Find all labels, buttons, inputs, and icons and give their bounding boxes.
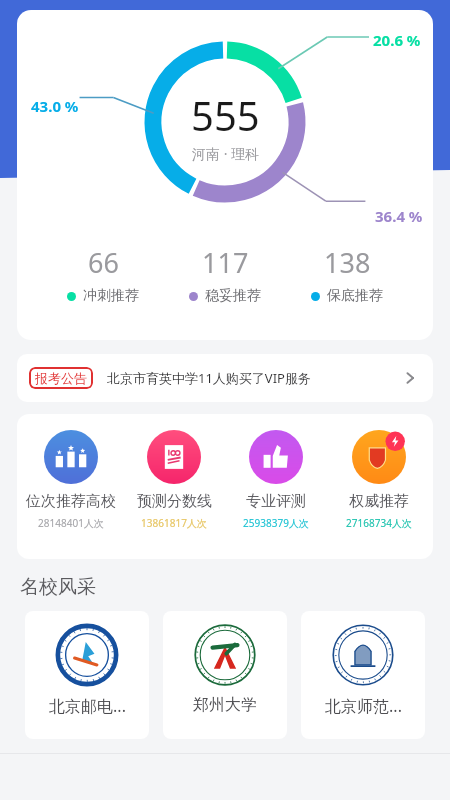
staticText: 66 bbox=[88, 244, 119, 281]
staticText: 名校风采 bbox=[20, 575, 96, 599]
button[interactable]: 报考公告 bbox=[17, 354, 433, 402]
staticText: 冲刺推荐 bbox=[83, 287, 139, 305]
staticText: 43.0 % bbox=[31, 96, 79, 116]
staticText: 报考公告 bbox=[35, 370, 87, 386]
staticText: 河南 · 理科 bbox=[192, 144, 260, 163]
staticText: 北京市育英中学11人购买了VIP服务 bbox=[107, 369, 399, 387]
staticText: 138 bbox=[324, 244, 371, 281]
staticText: 36.4 % bbox=[375, 206, 423, 226]
staticText: 28148401人次 bbox=[38, 516, 104, 530]
button[interactable]: 位次推荐高校 bbox=[23, 428, 119, 532]
button[interactable]: 555 bbox=[17, 10, 433, 340]
button[interactable]: 北京师范... bbox=[301, 611, 425, 739]
other: 查看更多 bbox=[399, 367, 421, 389]
button[interactable]: 66 bbox=[61, 242, 145, 307]
staticText: 117 bbox=[202, 244, 249, 281]
staticText: 专业评测 bbox=[246, 492, 306, 511]
staticText: 20.6 % bbox=[373, 30, 421, 50]
button[interactable]: 北京邮电... bbox=[25, 611, 149, 739]
button[interactable]: 117 bbox=[183, 242, 267, 307]
staticText: 稳妥推荐 bbox=[205, 287, 261, 305]
staticText: 位次推荐高校 bbox=[26, 492, 116, 511]
staticText: 25938379人次 bbox=[243, 516, 309, 530]
staticText: 权威推荐 bbox=[349, 492, 409, 511]
button[interactable]: 预测分数线 bbox=[126, 428, 222, 532]
button[interactable]: 138 bbox=[305, 242, 389, 307]
button[interactable]: 郑州大学 bbox=[163, 611, 287, 739]
staticText: 27168734人次 bbox=[346, 516, 412, 530]
button[interactable]: 权威推荐 bbox=[331, 428, 427, 532]
staticText: 郑州大学 bbox=[193, 695, 257, 715]
staticText: 555 bbox=[191, 88, 260, 142]
staticText: 北京邮电... bbox=[49, 695, 126, 717]
staticText: 北京师范... bbox=[325, 695, 402, 717]
staticText: 13861817人次 bbox=[141, 516, 207, 530]
staticText: 保底推荐 bbox=[327, 287, 383, 305]
button[interactable]: 专业评测 bbox=[228, 428, 324, 532]
staticText: 预测分数线 bbox=[137, 492, 212, 511]
